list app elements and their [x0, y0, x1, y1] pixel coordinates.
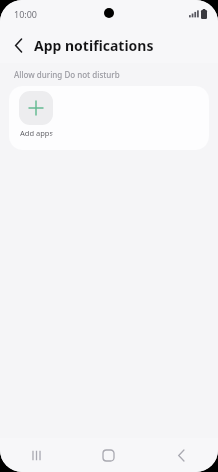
- button[interactable]: Recent apps: [0, 438, 72, 472]
- button[interactable]: Back: [145, 438, 218, 472]
- staticText: 10:00: [14, 8, 38, 20]
- button[interactable]: Add apps: [18, 91, 54, 138]
- staticText: Allow during Do not disturb: [14, 69, 120, 80]
- button[interactable]: Back: [6, 32, 32, 58]
- staticText: Add apps: [20, 128, 53, 138]
- staticText: App notifications: [34, 36, 154, 55]
- button[interactable]: Home: [72, 438, 145, 472]
